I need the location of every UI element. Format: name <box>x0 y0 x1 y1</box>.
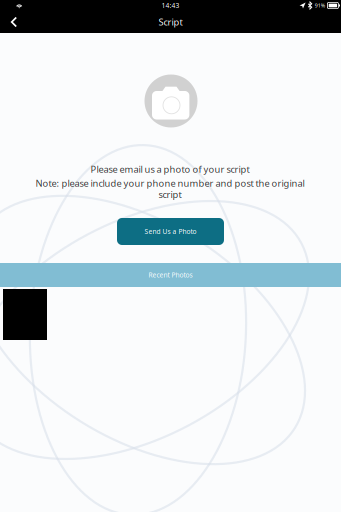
staticText: Script <box>158 16 182 28</box>
button[interactable]: Back <box>0 12 26 32</box>
staticText: Send Us a Photo <box>144 227 196 236</box>
button[interactable]: Recent Photos <box>0 263 341 287</box>
staticText: script <box>158 188 181 201</box>
button[interactable]: Send Us a Photo <box>117 218 224 245</box>
staticText: 14:43 <box>161 1 179 10</box>
staticText: Note: please include your phone number a… <box>35 177 304 189</box>
staticText: Please email us a photo of your script <box>90 163 249 175</box>
staticText: Recent Photos <box>148 271 192 279</box>
staticText: 91% <box>315 2 325 9</box>
